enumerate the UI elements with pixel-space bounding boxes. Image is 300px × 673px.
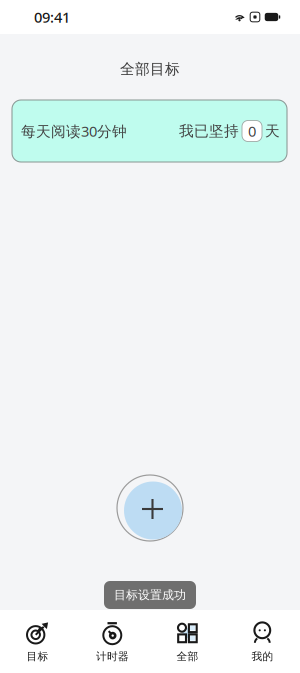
button[interactable]: 计时器 — [75, 610, 150, 673]
staticText: 计时器 — [96, 650, 129, 663]
staticText: 全部目标 — [120, 60, 180, 78]
staticText: 目标 — [26, 650, 48, 663]
button[interactable]: 全部 — [150, 610, 225, 673]
staticText: 天 — [265, 122, 280, 140]
staticText: 每天阅读30分钟 — [21, 121, 127, 141]
staticText: 0 — [248, 121, 256, 141]
button[interactable]: Add goal — [117, 475, 189, 545]
staticText: 目标设置成功 — [114, 588, 186, 602]
staticText: 09:41 — [34, 7, 70, 27]
button[interactable]: 每天阅读30分钟 — [12, 100, 287, 162]
button[interactable]: 我的 — [225, 610, 300, 673]
button[interactable]: 目标 — [0, 610, 75, 673]
staticText: 我已坚持 — [179, 122, 239, 140]
staticText: 我的 — [251, 650, 273, 663]
staticText: 全部 — [176, 650, 198, 663]
